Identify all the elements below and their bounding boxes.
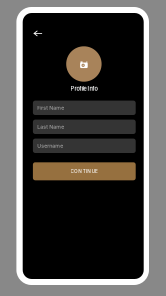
staticText: Profile Info xyxy=(71,85,98,92)
staticText: First Name xyxy=(37,105,64,111)
button[interactable]: Back xyxy=(29,25,47,41)
staticText: CONTINUE xyxy=(71,168,98,174)
staticText: Username xyxy=(37,143,63,149)
button[interactable]: Change profile photo xyxy=(66,46,102,82)
staticText: Last Name xyxy=(37,124,64,130)
button[interactable]: CONTINUE xyxy=(33,162,136,180)
